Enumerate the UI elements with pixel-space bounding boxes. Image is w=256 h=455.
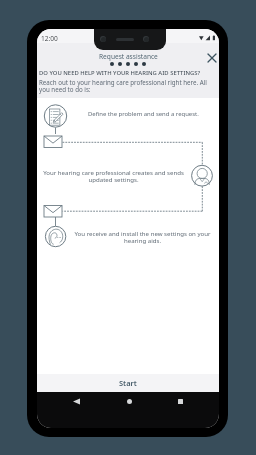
button[interactable]: Recents xyxy=(173,394,187,408)
button[interactable]: Close xyxy=(204,50,219,65)
staticText: You receive and install the new settings… xyxy=(74,229,211,245)
staticText: 12:00 xyxy=(41,34,58,43)
staticText: Define the problem and send a request. xyxy=(88,110,199,118)
button[interactable]: Start xyxy=(37,374,219,392)
staticText: Reach out to your hearing care professio… xyxy=(39,78,211,94)
staticText: Start xyxy=(119,378,137,388)
button[interactable]: Back xyxy=(69,394,83,408)
button[interactable]: Home xyxy=(122,394,136,408)
staticText: Request assistance xyxy=(99,52,158,61)
staticText: Your hearing care professional creates a… xyxy=(41,168,186,184)
staticText: DO YOU NEED HELP WITH YOUR HEARING AID S… xyxy=(39,69,201,77)
